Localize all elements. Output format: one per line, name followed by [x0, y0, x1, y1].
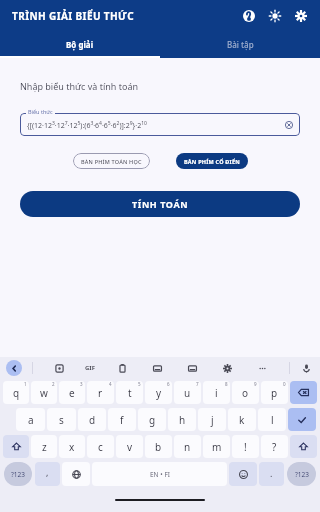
- button[interactable]: t: [116, 381, 143, 404]
- staticText: .: [270, 467, 273, 479]
- staticText: 1: [24, 381, 27, 387]
- button[interactable]: Enter: [288, 408, 316, 431]
- staticText: p: [271, 386, 278, 400]
- button[interactable]: Translate: [149, 360, 165, 376]
- button[interactable]: TÍNH TOÁN: [20, 191, 300, 217]
- staticText: 0: [283, 381, 286, 387]
- button[interactable]: Shift: [3, 435, 29, 458]
- staticText: 5: [138, 381, 141, 387]
- button[interactable]: c: [87, 435, 114, 458]
- button[interactable]: v: [116, 435, 143, 458]
- button[interactable]: Bài tập: [160, 32, 320, 56]
- button[interactable]: d: [78, 408, 106, 431]
- button[interactable]: n: [174, 435, 201, 458]
- button[interactable]: .: [259, 462, 284, 486]
- button[interactable]: g: [138, 408, 166, 431]
- staticText: k: [239, 413, 245, 427]
- button[interactable]: BÀN PHÍM CỔ ĐIỂN: [176, 153, 248, 169]
- button[interactable]: Back: [6, 360, 22, 376]
- button[interactable]: i: [203, 381, 230, 404]
- button[interactable]: a: [16, 408, 45, 431]
- button[interactable]: w: [31, 381, 57, 404]
- button[interactable]: e: [59, 381, 85, 404]
- button[interactable]: Emoji: [229, 462, 257, 486]
- button[interactable]: Bộ giải: [0, 32, 160, 56]
- button[interactable]: f: [108, 408, 136, 431]
- button[interactable]: EN • FI: [92, 462, 227, 486]
- staticText: TÍNH TOÁN: [132, 198, 189, 210]
- button[interactable]: ?: [261, 435, 288, 458]
- staticText: 2: [52, 381, 55, 387]
- staticText: x: [69, 440, 75, 454]
- button[interactable]: Keyboard mode: [184, 360, 200, 376]
- button[interactable]: q: [3, 381, 29, 404]
- button[interactable]: s: [47, 408, 76, 431]
- button[interactable]: m: [203, 435, 230, 458]
- staticText: {[(12·123·127·125):(63·64·65·62)]:29}·21…: [27, 120, 147, 130]
- staticText: z: [42, 440, 47, 454]
- staticText: TRÌNH GIẢI BIỂU THỨC: [12, 9, 135, 23]
- staticText: Biểu thức: [28, 108, 53, 115]
- button[interactable]: ?123: [287, 462, 316, 486]
- button[interactable]: Brightness: [264, 5, 286, 27]
- staticText: 8: [225, 381, 228, 387]
- staticText: 6: [167, 381, 170, 387]
- staticText: s: [59, 413, 64, 427]
- staticText: b: [155, 440, 162, 454]
- staticText: l: [271, 413, 274, 427]
- button[interactable]: Settings: [219, 360, 235, 376]
- staticText: a: [28, 413, 34, 427]
- button[interactable]: r: [87, 381, 114, 404]
- button[interactable]: GIF: [85, 364, 95, 372]
- staticText: f: [120, 413, 124, 427]
- staticText: q: [13, 386, 20, 400]
- button[interactable]: BÀN PHÍM TOÁN HỌC: [73, 153, 150, 169]
- button[interactable]: Stickers: [51, 360, 67, 376]
- button[interactable]: Clipboard: [114, 360, 130, 376]
- button[interactable]: Clear: [284, 120, 294, 130]
- button[interactable]: Voice input: [298, 360, 314, 376]
- button[interactable]: x: [59, 435, 85, 458]
- button[interactable]: More: [254, 360, 270, 376]
- button[interactable]: ?123: [4, 462, 32, 486]
- button[interactable]: k: [228, 408, 256, 431]
- staticText: e: [69, 386, 75, 400]
- button[interactable]: ,: [35, 462, 60, 486]
- staticText: ?123: [295, 470, 309, 479]
- button[interactable]: j: [198, 408, 226, 431]
- button[interactable]: Shift: [290, 435, 317, 458]
- staticText: c: [98, 440, 103, 454]
- staticText: Bộ giải: [66, 39, 94, 50]
- staticText: h: [179, 413, 186, 427]
- staticText: v: [127, 440, 133, 454]
- staticText: i: [215, 386, 218, 400]
- button[interactable]: !: [232, 435, 259, 458]
- button[interactable]: h: [168, 408, 196, 431]
- staticText: t: [128, 386, 132, 400]
- button[interactable]: z: [31, 435, 57, 458]
- staticText: Nhập biểu thức và tính toán: [20, 80, 138, 92]
- button[interactable]: l: [258, 408, 286, 431]
- staticText: u: [184, 386, 191, 400]
- staticText: ?123: [11, 470, 25, 479]
- button[interactable]: y: [145, 381, 172, 404]
- staticText: w: [40, 386, 48, 400]
- button[interactable]: Help: [238, 5, 260, 27]
- staticText: EN • FI: [150, 470, 170, 479]
- staticText: g: [149, 413, 156, 427]
- button[interactable]: p: [261, 381, 288, 404]
- button[interactable]: Backspace: [290, 381, 317, 404]
- button[interactable]: u: [174, 381, 201, 404]
- staticText: BÀN PHÍM TOÁN HỌC: [81, 158, 142, 165]
- button[interactable]: Settings: [290, 5, 312, 27]
- button[interactable]: o: [232, 381, 259, 404]
- button[interactable]: {[(12·123·127·125):(63·64·65·62)]:29}·21…: [20, 113, 300, 136]
- staticText: m: [212, 440, 222, 454]
- staticText: !: [244, 440, 247, 454]
- staticText: o: [242, 386, 249, 400]
- button[interactable]: Change language: [62, 462, 90, 486]
- staticText: y: [156, 386, 162, 400]
- staticText: 9: [254, 381, 257, 387]
- button[interactable]: b: [145, 435, 172, 458]
- staticText: j: [211, 413, 214, 427]
